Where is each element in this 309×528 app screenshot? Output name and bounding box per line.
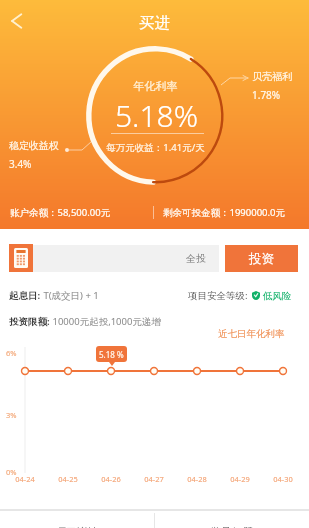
- button[interactable]: 投资: [225, 245, 298, 272]
- staticText: 年化利率: [86, 79, 225, 93]
- staticText: 6%: [6, 348, 17, 358]
- staticText: 贝壳福利: [252, 70, 292, 83]
- staticText: T(成交日) + 1: [41, 289, 99, 302]
- staticText: 稳定收益权: [9, 139, 59, 152]
- staticText: 04-25: [54, 474, 82, 484]
- staticText: 04-29: [226, 474, 254, 484]
- button[interactable]: Calculator: [9, 244, 33, 272]
- staticText: 常见问题: [210, 525, 254, 528]
- staticText: 项目安全等级:: [188, 289, 248, 302]
- button[interactable]: 项目详情: [0, 511, 154, 528]
- staticText: 剩余可投金额：1990000.0元: [163, 206, 286, 219]
- staticText: 全投: [186, 252, 206, 265]
- staticText: 项目详情: [55, 525, 99, 528]
- staticText: 5.18 %: [99, 349, 124, 360]
- staticText: 买进: [0, 13, 309, 33]
- staticText: 10000元起投,1000元递增: [50, 315, 161, 328]
- staticText: 投资限额:: [9, 315, 50, 328]
- staticText: 1.78%: [252, 88, 281, 102]
- staticText: 每万元收益：1.41元/天: [86, 141, 225, 154]
- staticText: 3%: [6, 410, 17, 420]
- button[interactable]: 常见问题: [155, 511, 309, 528]
- staticText: 04-30: [269, 474, 297, 484]
- staticText: 近七日年化利率: [218, 328, 285, 340]
- staticText: 04-26: [97, 474, 125, 484]
- button[interactable]: Back: [0, 0, 30, 42]
- staticText: 低风险: [263, 290, 292, 302]
- staticText: 04-28: [183, 474, 211, 484]
- staticText: 04-27: [140, 474, 168, 484]
- staticText: 5.18%: [87, 95, 226, 136]
- button[interactable]: 全投: [33, 245, 219, 272]
- staticText: 投资: [249, 251, 274, 267]
- staticText: 3.4%: [9, 157, 32, 171]
- staticText: 账户余额：58,500.00元: [10, 206, 111, 219]
- staticText: 0%: [6, 467, 17, 477]
- staticText: 起息日:: [9, 289, 41, 302]
- staticText: 04-24: [11, 474, 39, 484]
